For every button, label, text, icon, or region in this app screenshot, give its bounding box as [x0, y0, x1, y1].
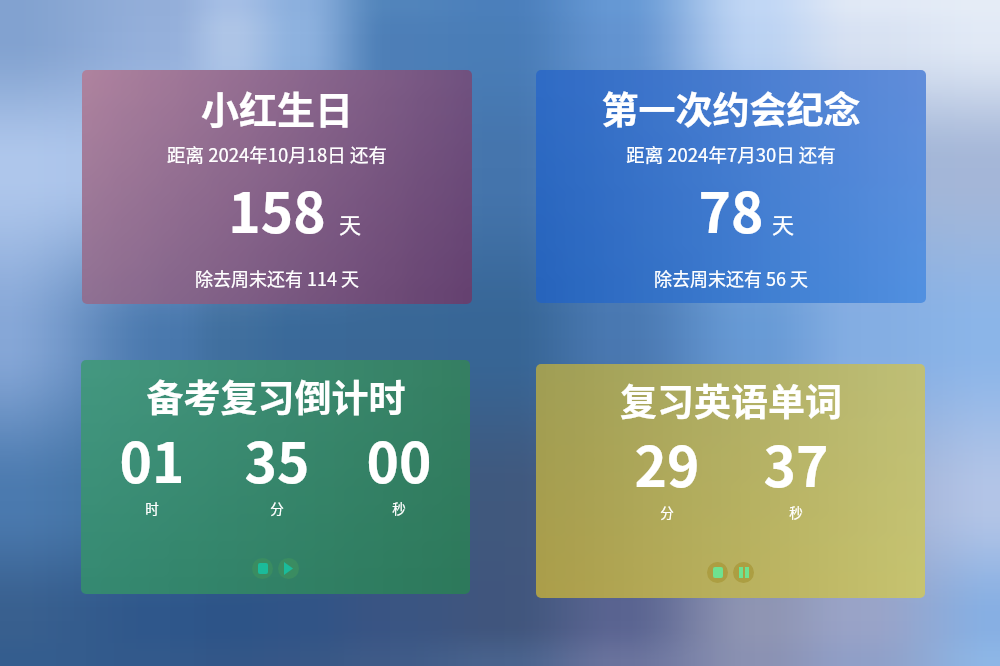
staticText: 00 — [319, 419, 470, 499]
staticText: 分 — [627, 502, 707, 522]
staticText: 分 — [237, 498, 317, 518]
button[interactable]: Stop — [707, 562, 728, 583]
staticText: 158 — [167, 169, 387, 249]
button[interactable]: 小红生日 — [82, 70, 472, 304]
staticText: 备考复习倒计时 — [86, 369, 466, 423]
staticText: 时 — [112, 498, 192, 518]
staticText: 天 — [753, 207, 813, 239]
staticText: 秒 — [756, 502, 836, 522]
staticText: 除去周末还有 56 天 — [541, 265, 921, 291]
staticText: 小红生日 — [87, 80, 467, 135]
button[interactable]: Pause — [733, 562, 754, 583]
button[interactable]: Stop — [252, 558, 273, 579]
staticText: 除去周末还有 114 天 — [87, 265, 467, 291]
button[interactable]: 备考复习倒计时 — [81, 360, 470, 594]
staticText: 37 — [716, 423, 876, 503]
button[interactable]: Play — [278, 558, 299, 579]
staticText: 天 — [320, 207, 380, 239]
staticText: 01 — [81, 419, 232, 499]
staticText: 距离 2024年10月18日 还有 — [87, 141, 467, 168]
button[interactable]: 复习英语单词 — [536, 364, 925, 598]
staticText: 29 — [587, 423, 747, 503]
staticText: 秒 — [359, 498, 439, 518]
staticText: 距离 2024年7月30日 还有 — [541, 141, 921, 168]
staticText: 复习英语单词 — [541, 373, 921, 427]
staticText: 第一次约会纪念 — [541, 81, 921, 135]
button[interactable]: 第一次约会纪念 — [536, 70, 926, 303]
staticText: 78 — [621, 169, 841, 249]
staticText: 35 — [197, 419, 357, 499]
